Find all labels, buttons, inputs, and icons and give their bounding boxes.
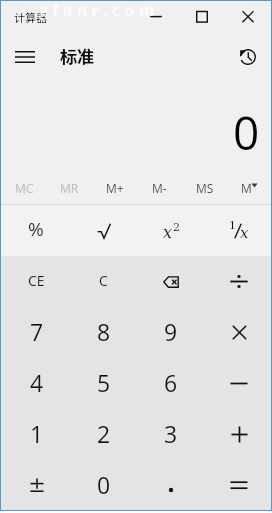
staticText: gfanr.com (39, 0, 159, 21)
button[interactable]: 9 (135, 307, 203, 358)
staticText: 8 (97, 316, 111, 347)
button[interactable]: Plus minus (1, 460, 68, 510)
button[interactable]: Square (135, 205, 203, 256)
button[interactable]: Operator (203, 358, 271, 409)
button[interactable]: Close (225, 1, 271, 32)
button[interactable]: Operator (203, 409, 271, 460)
staticText: M (241, 180, 252, 196)
staticText: 4 (30, 367, 44, 398)
button[interactable]: % (1, 205, 68, 256)
button[interactable]: 3 (135, 409, 203, 460)
button[interactable]: M+ (91, 177, 136, 204)
staticText: 计算器 (14, 9, 47, 25)
staticText: 标准 (60, 43, 94, 68)
staticText: 5 (97, 367, 111, 398)
button[interactable]: Maximize (179, 1, 225, 32)
button[interactable]: Square root (68, 205, 135, 256)
button[interactable]: C (68, 256, 135, 307)
staticText: M- (152, 180, 167, 196)
staticText: 3 (164, 418, 178, 449)
button[interactable]: Operator (203, 307, 271, 358)
button[interactable]: Backspace (135, 256, 203, 307)
button[interactable]: Decimal point (135, 460, 203, 510)
staticText: M+ (106, 180, 124, 196)
button[interactable]: MS (181, 177, 226, 204)
staticText: 6 (164, 367, 178, 398)
button[interactable]: Divide (203, 256, 271, 307)
staticText: 1 (229, 219, 236, 232)
staticText: 0 (97, 469, 111, 500)
staticText: CE (28, 271, 45, 290)
staticText: MR (60, 180, 79, 196)
button[interactable]: 5 (68, 358, 135, 409)
staticText: % (28, 216, 44, 242)
staticText: MS (196, 180, 214, 196)
button[interactable]: Equals (203, 460, 271, 510)
button[interactable]: MC (1, 177, 46, 204)
button[interactable]: M- (136, 177, 181, 204)
button[interactable]: Menu (4, 35, 45, 79)
staticText: C (99, 271, 108, 290)
staticText: 9 (164, 316, 178, 347)
staticText: x (240, 224, 249, 241)
staticText: x (163, 223, 173, 242)
staticText: 1 (30, 418, 44, 449)
button[interactable]: 2 (68, 409, 135, 460)
button[interactable]: Reciprocal (203, 205, 271, 256)
button[interactable]: Minimize (133, 1, 179, 32)
button[interactable]: History (230, 37, 266, 77)
button[interactable]: 1 (1, 409, 68, 460)
staticText: MC (15, 180, 34, 196)
button[interactable]: Memory options (226, 177, 271, 204)
button[interactable]: 6 (135, 358, 203, 409)
staticText: 2 (173, 221, 180, 234)
button[interactable]: MR (46, 177, 91, 204)
button[interactable]: 0 (68, 460, 135, 510)
staticText: 7 (30, 316, 44, 347)
staticText: 2 (97, 418, 111, 449)
staticText: 0 (233, 101, 260, 164)
button[interactable]: 7 (1, 307, 68, 358)
button[interactable]: 8 (68, 307, 135, 358)
button[interactable]: 4 (1, 358, 68, 409)
button[interactable]: CE (1, 256, 68, 307)
